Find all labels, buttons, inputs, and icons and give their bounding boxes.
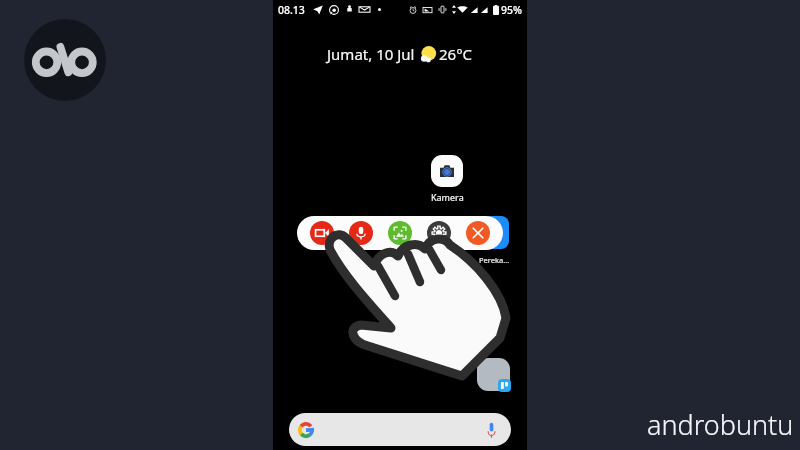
button[interactable]: Record video bbox=[310, 221, 334, 245]
staticText: 26°C bbox=[439, 44, 473, 64]
staticText: 08.13 bbox=[278, 3, 305, 17]
staticText: 95% bbox=[501, 3, 522, 17]
staticText: Kamera bbox=[431, 191, 464, 203]
button[interactable] bbox=[289, 413, 511, 446]
button[interactable]: Screenshot bbox=[388, 221, 412, 245]
other: Androbuntu logo bbox=[24, 19, 106, 101]
button[interactable]: Close bbox=[466, 221, 490, 245]
button[interactable]: Settings bbox=[427, 221, 451, 245]
button[interactable]: Record audio bbox=[349, 221, 373, 245]
staticText: androbuntu bbox=[647, 406, 794, 443]
staticText: Pereka... bbox=[479, 255, 510, 265]
button[interactable]: App bbox=[477, 358, 510, 391]
button[interactable]: Kamera bbox=[425, 155, 469, 203]
staticText: Jumat, 10 Jul bbox=[327, 44, 415, 64]
